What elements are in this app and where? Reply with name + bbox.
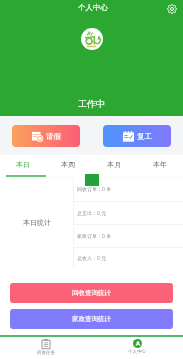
button[interactable]: 本周 [45, 155, 91, 177]
button[interactable]: 回收查询统计 [10, 283, 173, 303]
staticText: 请假 [46, 132, 61, 141]
staticText: 本周 [61, 160, 75, 169]
button[interactable]: 请假 [12, 125, 80, 147]
button[interactable]: 本日 [0, 155, 45, 177]
staticText: 所有任务 [37, 350, 55, 356]
button[interactable]: 本月 [91, 155, 137, 177]
button[interactable]: Avatar [81, 28, 103, 50]
staticText: 总收入：0 元 [77, 255, 107, 262]
button[interactable]: 本年 [137, 155, 183, 177]
button[interactable]: 家政查询统计 [10, 309, 173, 329]
staticText: 总支出：0 元 [77, 210, 107, 217]
staticText: 本月 [107, 160, 121, 169]
staticText: 工作中 [78, 98, 105, 109]
staticText: 家政查询统计 [72, 315, 111, 323]
staticText: 家政订单：0 单 [77, 233, 112, 240]
button[interactable]: 复工 [103, 125, 171, 147]
staticText: 复工 [137, 132, 152, 141]
staticText: 本日统计 [23, 218, 51, 227]
staticText: 回收查询统计 [72, 289, 111, 297]
button[interactable]: 所有任务 [0, 335, 91, 359]
button[interactable]: 个人中心 [91, 335, 183, 359]
staticText: 本年 [153, 160, 167, 169]
staticText: 个人中心 [78, 3, 108, 12]
staticText: 本日 [16, 160, 30, 169]
staticText: 回收订单：0 单 [77, 186, 112, 193]
staticText: 个人中心 [128, 349, 146, 355]
button[interactable]: Settings [165, 2, 179, 16]
